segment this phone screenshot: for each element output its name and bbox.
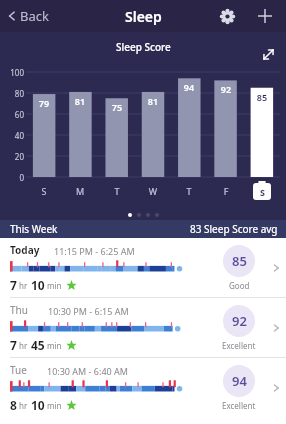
staticText: T [175, 185, 203, 197]
button[interactable]: Expand chart [258, 44, 278, 64]
button[interactable]: Add [252, 3, 278, 29]
staticText: Sleep Score [116, 40, 171, 54]
staticText: 45 [31, 337, 45, 353]
button[interactable]: S [253, 181, 271, 200]
staticText: 85 [248, 91, 276, 103]
staticText: Back [20, 7, 49, 25]
staticText: 94 [232, 372, 247, 390]
staticText: 40 [2, 130, 24, 141]
staticText: Tue [10, 363, 27, 377]
button[interactable]: Tue [0, 358, 286, 417]
staticText: 10 [31, 397, 45, 413]
staticText: This Week [10, 222, 58, 236]
staticText: min [47, 280, 62, 291]
staticText: Today [10, 243, 40, 257]
staticText: M [66, 185, 94, 197]
staticText: 85 [232, 252, 247, 270]
staticText: 7 [10, 277, 17, 293]
staticText: 80 [2, 88, 24, 99]
button[interactable]: Thu [0, 298, 286, 357]
button[interactable]: Settings [214, 3, 240, 29]
staticText: 60 [2, 109, 24, 120]
staticText: S [260, 186, 265, 198]
staticText: 11:15 PM - 6:25 AM [54, 245, 135, 257]
staticText: 10:30 PM - 6:15 AM [48, 305, 129, 317]
staticText: Thu [10, 303, 28, 317]
button[interactable]: Today [0, 238, 286, 297]
staticText: W [139, 185, 167, 197]
staticText: 8 [10, 397, 17, 413]
staticText: S [30, 185, 58, 197]
staticText: 100 [2, 67, 24, 78]
staticText: 92 [232, 312, 247, 330]
staticText: 75 [103, 101, 131, 113]
staticText: 10:30 AM - 6:40 AM [47, 365, 128, 377]
staticText: Excellent [222, 400, 256, 411]
staticText: 0 [2, 172, 24, 183]
staticText: 7 [10, 337, 17, 353]
staticText: hr [19, 340, 28, 351]
staticText: 81 [66, 95, 94, 107]
staticText: 20 [2, 151, 24, 162]
staticText: 10 [31, 277, 45, 293]
staticText: 81 [139, 95, 167, 107]
staticText: F [212, 185, 240, 197]
staticText: hr [19, 400, 28, 411]
staticText: Sleep [125, 7, 162, 26]
staticText: 83 Sleep Score avg [190, 222, 278, 236]
staticText: hr [19, 280, 28, 291]
staticText: Good [229, 280, 250, 291]
staticText: Excellent [222, 340, 256, 351]
staticText: T [103, 185, 131, 197]
staticText: 92 [212, 83, 240, 95]
staticText: min [47, 340, 62, 351]
staticText: 94 [175, 81, 203, 93]
button[interactable]: Back [0, 3, 57, 29]
staticText: min [47, 400, 62, 411]
staticText: 79 [30, 97, 58, 109]
